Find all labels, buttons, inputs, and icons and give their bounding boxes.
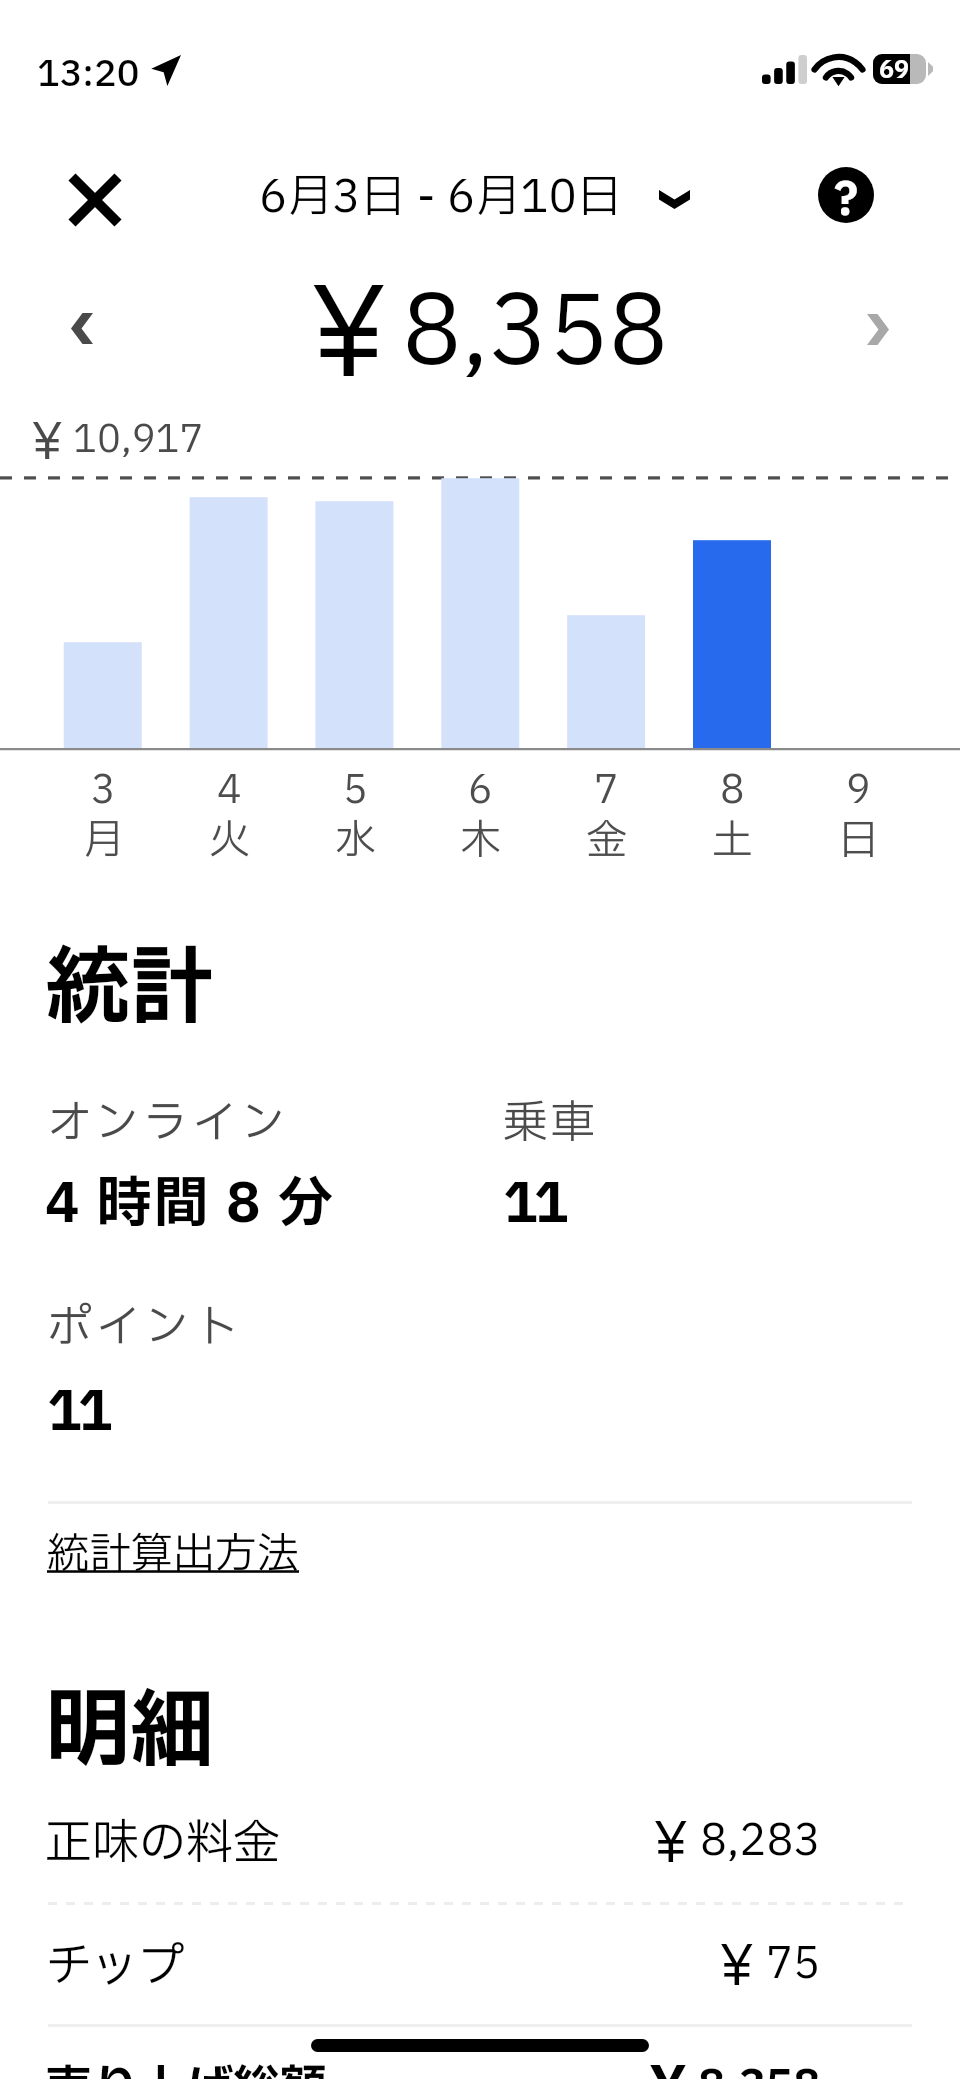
staticText: ¥ [649,2048,687,2079]
staticText: 木 [460,811,501,872]
staticText: 13:20 [37,48,140,102]
staticText: 売り上げ総額 [45,2054,327,2079]
staticText: 7 [594,762,619,820]
staticText: 日 [838,811,879,872]
staticText: ¥ [31,405,64,481]
staticText: 11 [503,1164,565,1246]
staticText: オンライン [47,1090,290,1157]
staticText: 明細 [46,1670,215,1796]
staticText: 8,358 [698,2054,821,2079]
button[interactable]: Close [44,149,146,251]
button[interactable]: Previous week [46,292,118,364]
staticText: 火 [209,811,250,872]
staticText: 8,358 [402,263,669,405]
staticText: 11 [47,1372,109,1454]
staticText: 統計算出方法 [47,1523,300,1586]
staticText: 3 [91,762,116,820]
staticText: 6月3日 - 6月10日 [259,164,622,231]
staticText: ? [834,167,859,222]
button[interactable]: チップ [0,1900,960,2008]
button[interactable]: Help [808,157,884,233]
staticText: 水 [335,811,376,872]
staticText: 9 [846,762,871,820]
button[interactable]: Next week [842,293,914,365]
staticText: 正味の料金 [45,1809,280,1879]
staticText: ポイント [47,1294,243,1361]
staticText: 月 [83,811,124,872]
button[interactable]: 売り上げ総額 [0,2022,960,2079]
staticText: 統計 [46,927,215,1053]
staticText: 金 [586,811,627,872]
staticText: 5 [343,762,368,820]
button[interactable]: 正味の料金 [0,1777,960,1885]
staticText: ¥ [719,1926,755,2010]
staticText: 4 時間 8 分 [45,1164,335,1246]
staticText: ¥ [309,243,389,431]
staticText: 乗車 [503,1090,599,1157]
staticText: チップ [45,1932,186,2002]
staticText: 6 [468,762,493,820]
staticText: 8,283 [700,1809,821,1873]
staticText: 10,917 [73,412,204,469]
staticText: ¥ [653,1803,689,1887]
staticText: 69 [879,54,910,83]
button[interactable]: 6月3日 - 6月10日 [247,152,702,243]
button[interactable]: 統計算出方法 [38,1515,309,1594]
staticText: 土 [712,811,753,872]
staticText: 4 [217,762,242,820]
staticText: 75 [766,1932,821,1996]
staticText: 8 [720,762,745,820]
